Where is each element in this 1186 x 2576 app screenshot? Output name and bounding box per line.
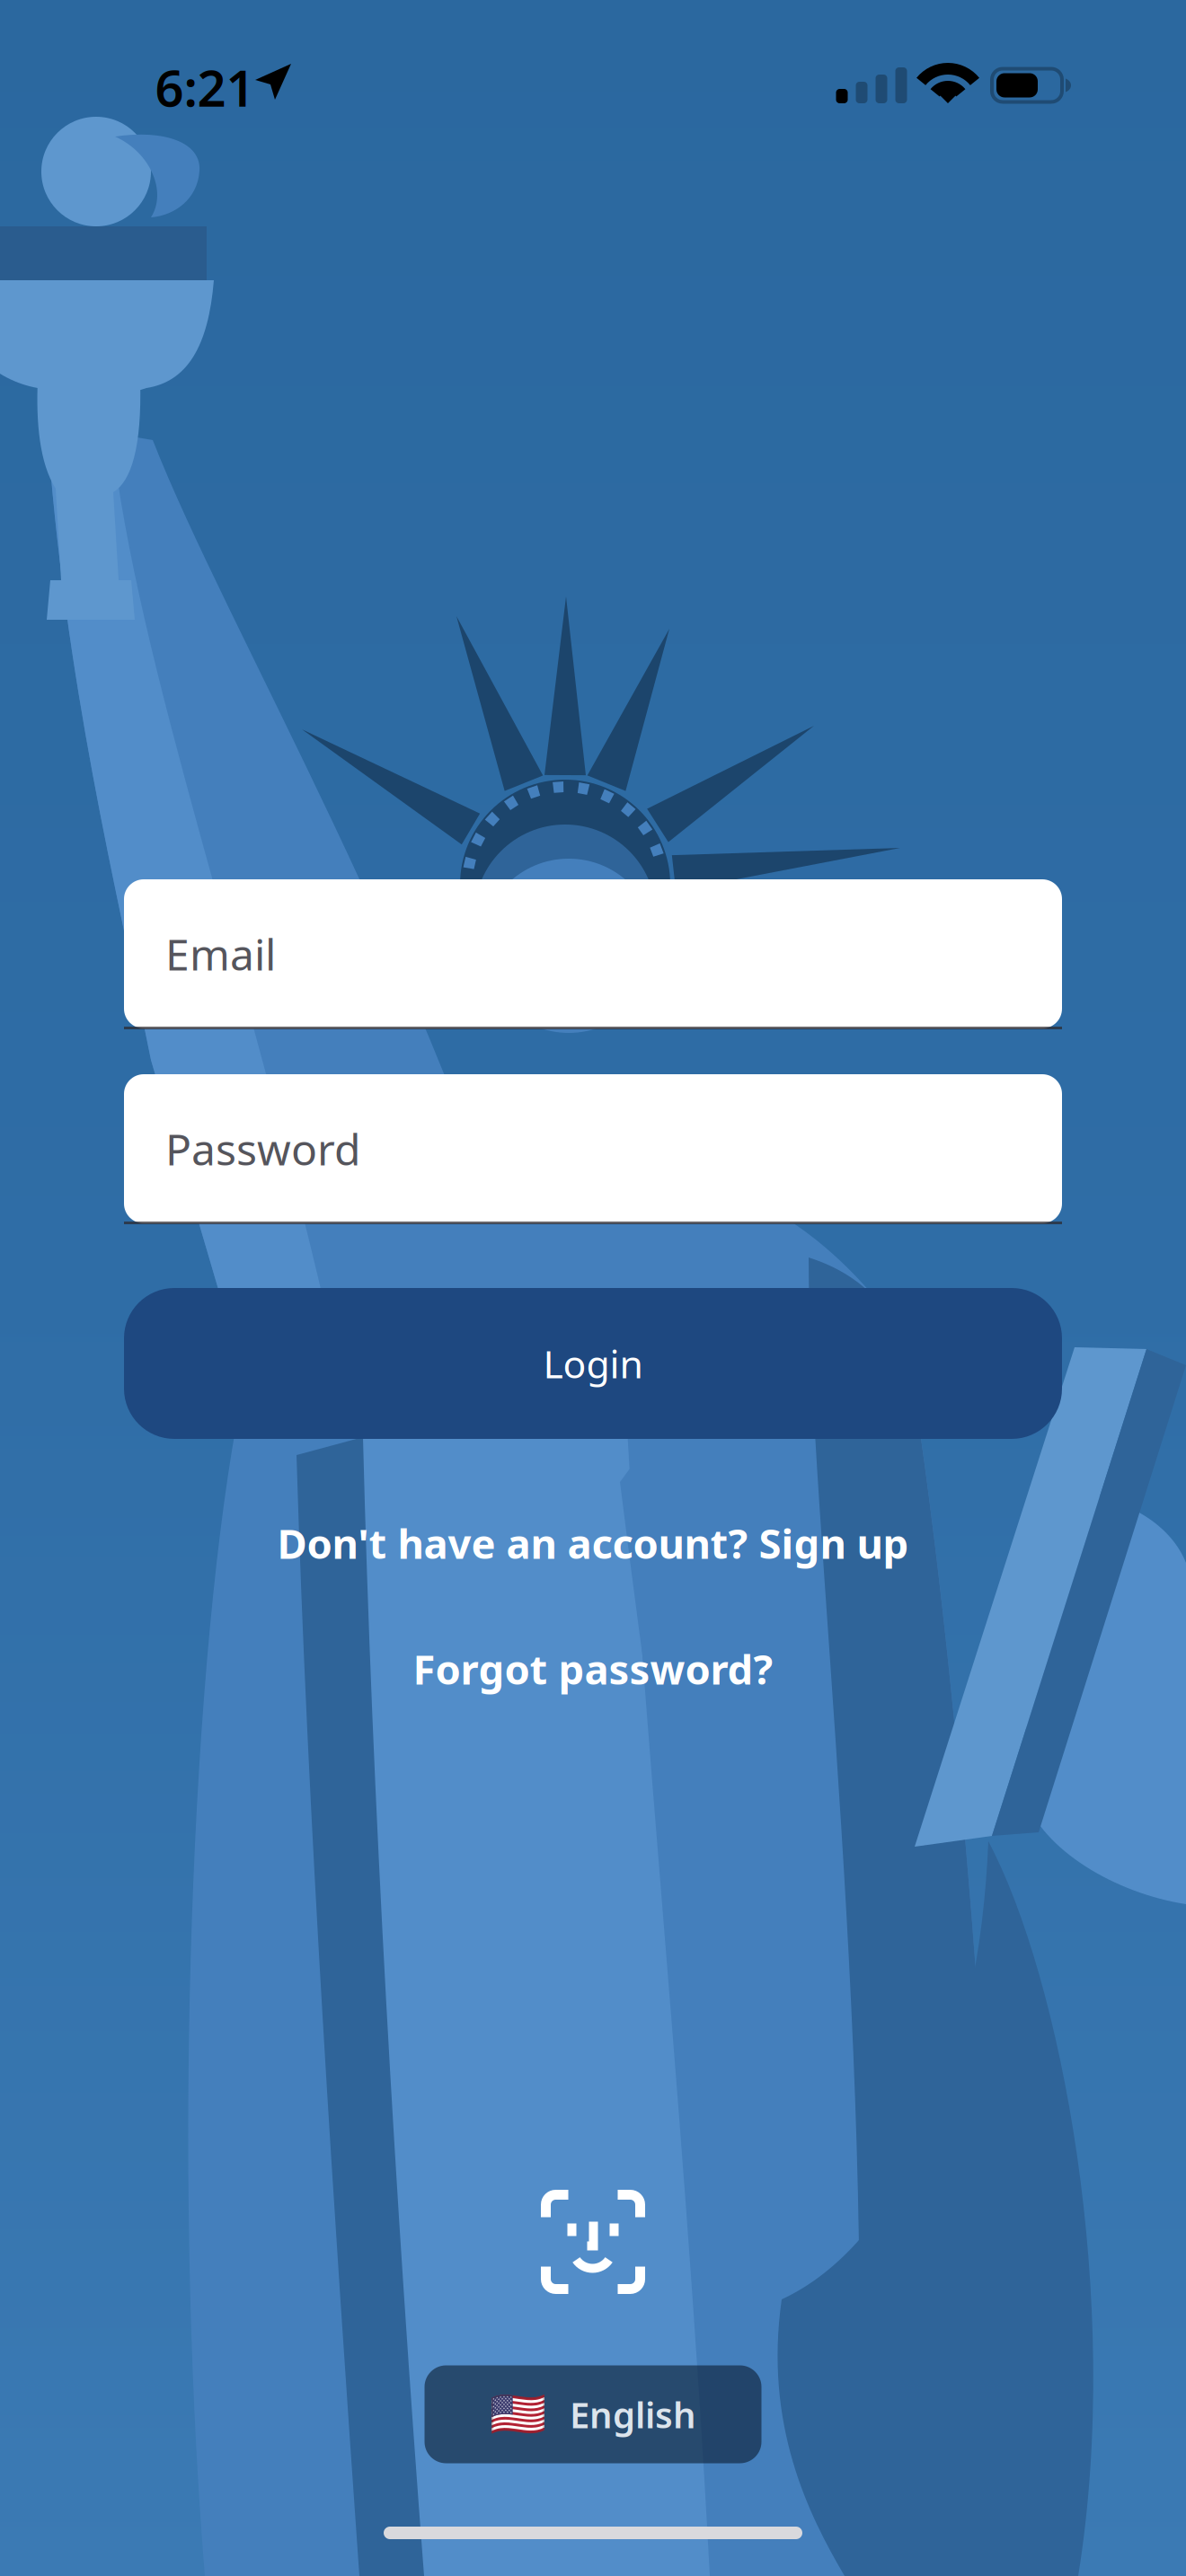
staticText: Password [165,1120,361,1177]
button[interactable]: Forgot password? [413,1642,773,1696]
button[interactable]: Password [124,1073,1062,1225]
button[interactable]: Don't have an account? Sign up [277,1516,909,1570]
button[interactable]: Email [124,878,1062,1030]
staticText: Login [543,1338,643,1389]
button[interactable]: Sign in with Face ID [540,2189,646,2294]
staticText: English [570,2390,696,2438]
staticText: Don't have an account? Sign up [277,1516,909,1570]
staticText: Email [165,925,276,982]
button[interactable]: Login [124,1288,1062,1439]
staticText: Forgot password? [413,1642,773,1696]
staticText: 6:21 [155,54,255,121]
button[interactable]: 🇺🇸 [425,2365,761,2463]
staticText: 🇺🇸 [490,2388,546,2440]
